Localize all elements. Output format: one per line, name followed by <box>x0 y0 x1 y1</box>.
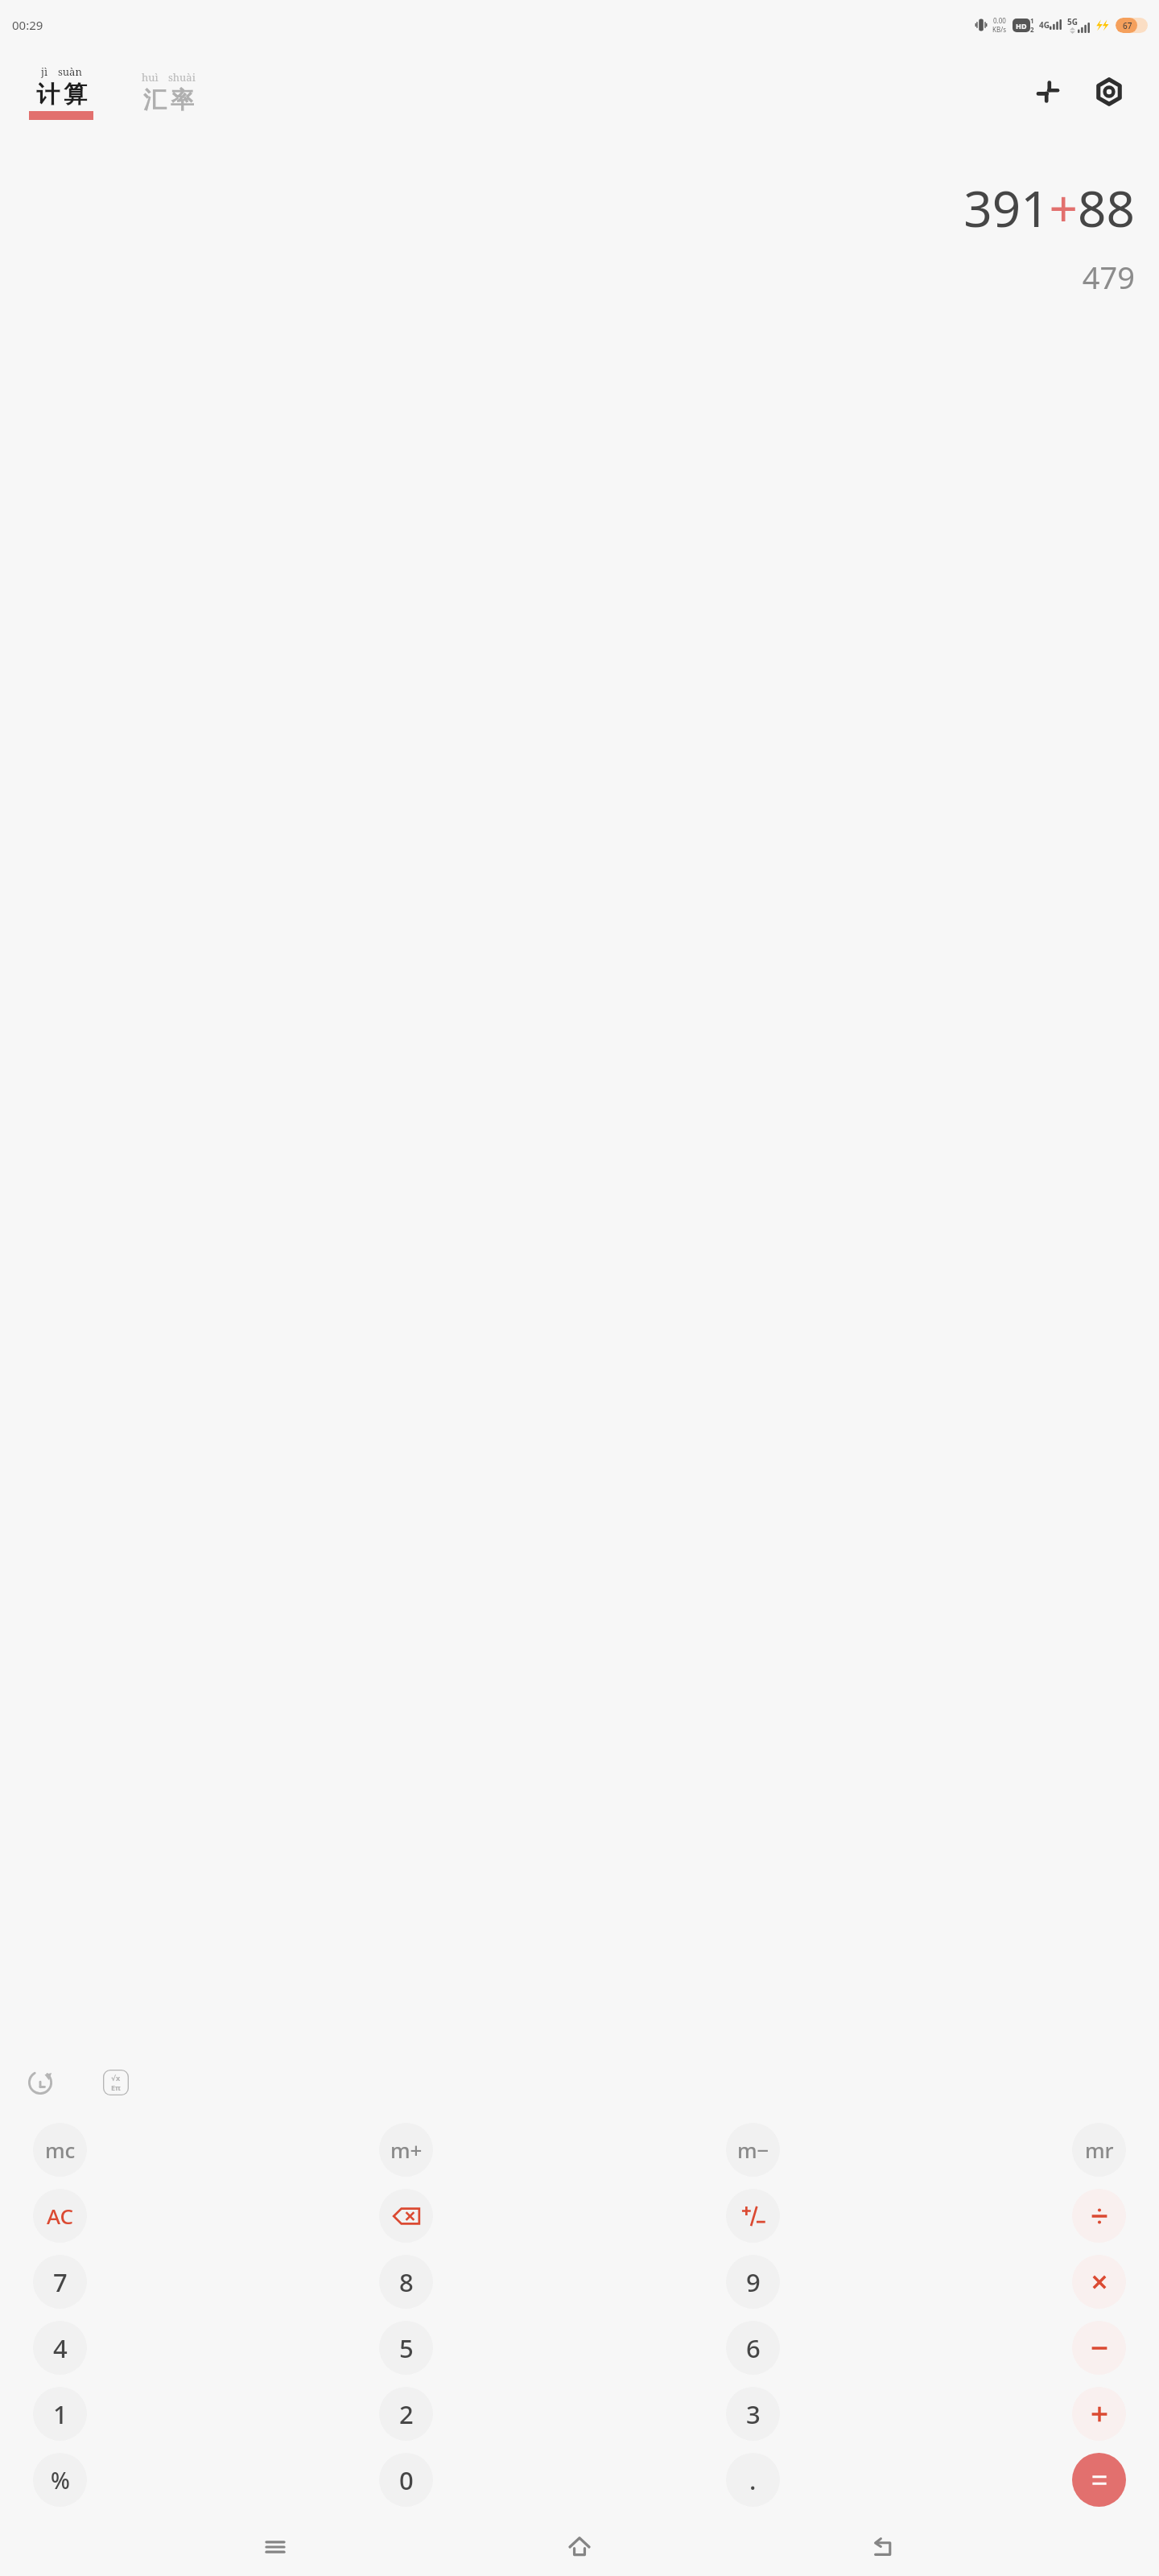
button[interactable]: Back <box>855 2518 913 2576</box>
button[interactable]: 7 <box>33 2255 87 2309</box>
button[interactable]: Minus <box>1072 2321 1126 2375</box>
staticText: 1 <box>53 2397 68 2431</box>
staticText: √x <box>111 2073 121 2083</box>
staticText: 1 <box>1030 16 1034 25</box>
staticText: 479 <box>1082 256 1135 298</box>
staticText: 6 <box>746 2331 761 2365</box>
button[interactable]: Plus <box>1072 2387 1126 2441</box>
staticText: 5G <box>1067 16 1078 27</box>
button[interactable]: % <box>33 2453 87 2507</box>
button[interactable]: Settings <box>1088 71 1130 113</box>
button[interactable]: Divide <box>1072 2189 1126 2243</box>
staticText: 算 <box>64 80 87 109</box>
staticText: m− <box>737 2136 769 2164</box>
button[interactable]: Multiply <box>1072 2255 1126 2309</box>
button[interactable]: 9 <box>726 2255 780 2309</box>
staticText: huì <box>142 70 159 85</box>
button[interactable]: 0 <box>379 2453 433 2507</box>
staticText: 计 <box>36 80 60 109</box>
staticText: 4 <box>53 2331 68 2365</box>
button[interactable]: mr <box>1072 2123 1126 2177</box>
button[interactable]: 5 <box>379 2321 433 2375</box>
staticText: AC <box>47 2202 74 2230</box>
staticText: 391+88 <box>963 174 1135 242</box>
button[interactable]: 6 <box>726 2321 780 2375</box>
staticText: 4G <box>1039 19 1050 31</box>
button[interactable]: AC <box>33 2189 87 2243</box>
button[interactable]: 3 <box>726 2387 780 2441</box>
button[interactable]: 8 <box>379 2255 433 2309</box>
button[interactable]: Equals <box>1072 2453 1126 2507</box>
staticText: mc <box>45 2136 76 2164</box>
staticText: 8 <box>399 2265 414 2299</box>
button[interactable]: Collapse <box>1027 71 1069 113</box>
staticText: . <box>749 2463 757 2497</box>
staticText: 2 <box>399 2397 414 2431</box>
button[interactable]: Recent apps <box>246 2518 304 2576</box>
staticText: 0 <box>399 2463 414 2497</box>
button[interactable]: History <box>18 2060 63 2105</box>
staticText: HD <box>1016 21 1027 31</box>
staticText: suàn <box>58 64 82 79</box>
staticText: 3 <box>746 2397 761 2431</box>
staticText: shuài <box>168 70 196 85</box>
staticText: 汇 <box>143 85 167 115</box>
staticText: 0.00 <box>993 16 1006 25</box>
button[interactable]: Scientific functions <box>93 2060 138 2105</box>
staticText: 9 <box>746 2265 761 2299</box>
staticText: 00:29 <box>12 17 43 33</box>
staticText: 67 <box>1123 20 1132 31</box>
button[interactable]: m+ <box>379 2123 433 2177</box>
staticText: 率 <box>171 85 194 115</box>
button[interactable]: huì <box>140 70 197 115</box>
staticText: 2 <box>1030 25 1034 34</box>
button[interactable]: mc <box>33 2123 87 2177</box>
staticText: Eπ <box>111 2083 121 2092</box>
staticText: KB/s <box>992 25 1006 34</box>
button[interactable]: Plus minus <box>726 2189 780 2243</box>
staticText: % <box>51 2465 70 2495</box>
staticText: 5 <box>399 2331 414 2365</box>
staticText: 7 <box>53 2265 68 2299</box>
staticText: mr <box>1085 2136 1114 2164</box>
button[interactable]: 4 <box>33 2321 87 2375</box>
staticText: jì <box>41 64 48 79</box>
button[interactable]: jì <box>27 64 95 120</box>
button[interactable]: Home <box>551 2518 608 2576</box>
button[interactable]: m− <box>726 2123 780 2177</box>
button[interactable]: 2 <box>379 2387 433 2441</box>
staticText: m+ <box>390 2136 423 2164</box>
button[interactable]: 1 <box>33 2387 87 2441</box>
button[interactable]: . <box>726 2453 780 2507</box>
button[interactable]: Backspace <box>379 2189 433 2243</box>
